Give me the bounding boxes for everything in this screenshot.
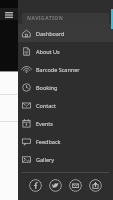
button[interactable]: Booking — [18, 78, 113, 96]
staticText: Dashboard — [36, 30, 65, 37]
button[interactable]: Gallery — [18, 150, 113, 168]
button[interactable]: Feedback — [18, 132, 113, 150]
button[interactable]: Dashboard — [18, 24, 113, 42]
button[interactable]: Events — [18, 114, 113, 132]
staticText: Feedback — [36, 138, 61, 145]
button[interactable]: Barcode Scanner — [18, 60, 113, 78]
button[interactable]: Email — [69, 179, 82, 192]
staticText: Events — [36, 120, 53, 127]
button[interactable]: About Us — [18, 42, 113, 60]
button[interactable]: Twitter — [49, 179, 62, 192]
staticText: About Us — [36, 48, 60, 55]
staticText: Gallery — [36, 156, 55, 163]
button[interactable]: Open navigation drawer — [3, 9, 14, 20]
button[interactable]: Share — [89, 179, 102, 192]
button[interactable]: Facebook — [29, 179, 42, 192]
button[interactable]: Contact — [18, 96, 113, 114]
staticText: Booking — [36, 84, 58, 91]
staticText: Barcode Scanner — [36, 66, 80, 73]
button[interactable]: NAVIGATION — [22, 13, 109, 24]
staticText: NAVIGATION — [27, 15, 64, 22]
staticText: Contact — [36, 102, 56, 109]
